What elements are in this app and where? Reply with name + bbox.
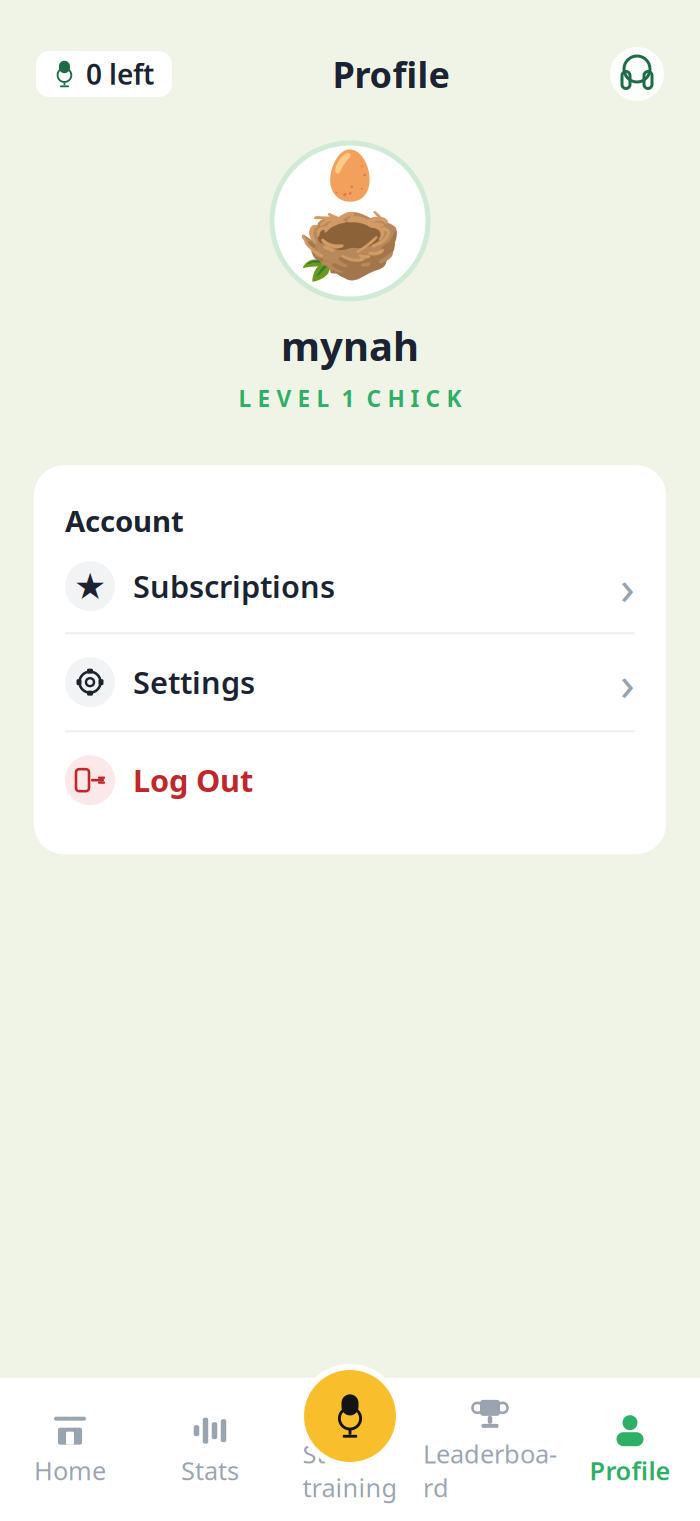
staticText: Subscriptions (133, 566, 335, 606)
button[interactable]: Start training (280, 1387, 420, 1516)
button[interactable]: Audio settings (610, 47, 664, 101)
staticText: 🥚 (320, 148, 380, 203)
staticText: Profile (589, 1454, 670, 1487)
button[interactable]: Profile (560, 1404, 700, 1499)
staticText: 0 left (86, 55, 154, 93)
staticText: Profile (332, 50, 449, 98)
staticText: ★ (74, 566, 106, 607)
button[interactable]: Settings (34, 634, 666, 730)
staticText: L E V E L 1 C H I C K (238, 383, 461, 413)
staticText: Home (34, 1454, 106, 1487)
button[interactable]: Leaderboard (420, 1387, 560, 1516)
staticText: Account (65, 501, 184, 540)
staticText: Start training (302, 1437, 397, 1504)
staticText: 🪹 (297, 197, 403, 294)
staticText: Settings (133, 662, 255, 702)
button[interactable]: Stats (140, 1404, 280, 1499)
button[interactable]: 0 left (36, 51, 172, 97)
button[interactable]: Start training (298, 1364, 402, 1468)
staticText: Stats (181, 1454, 239, 1487)
button[interactable]: ★ (34, 540, 666, 632)
staticText: › (620, 554, 635, 618)
button[interactable]: Log Out (34, 732, 666, 828)
staticText: › (620, 650, 635, 714)
staticText: Leaderboard (423, 1437, 557, 1504)
button[interactable]: Home (0, 1404, 140, 1499)
staticText: Log Out (133, 760, 253, 800)
staticText: mynah (281, 319, 419, 372)
